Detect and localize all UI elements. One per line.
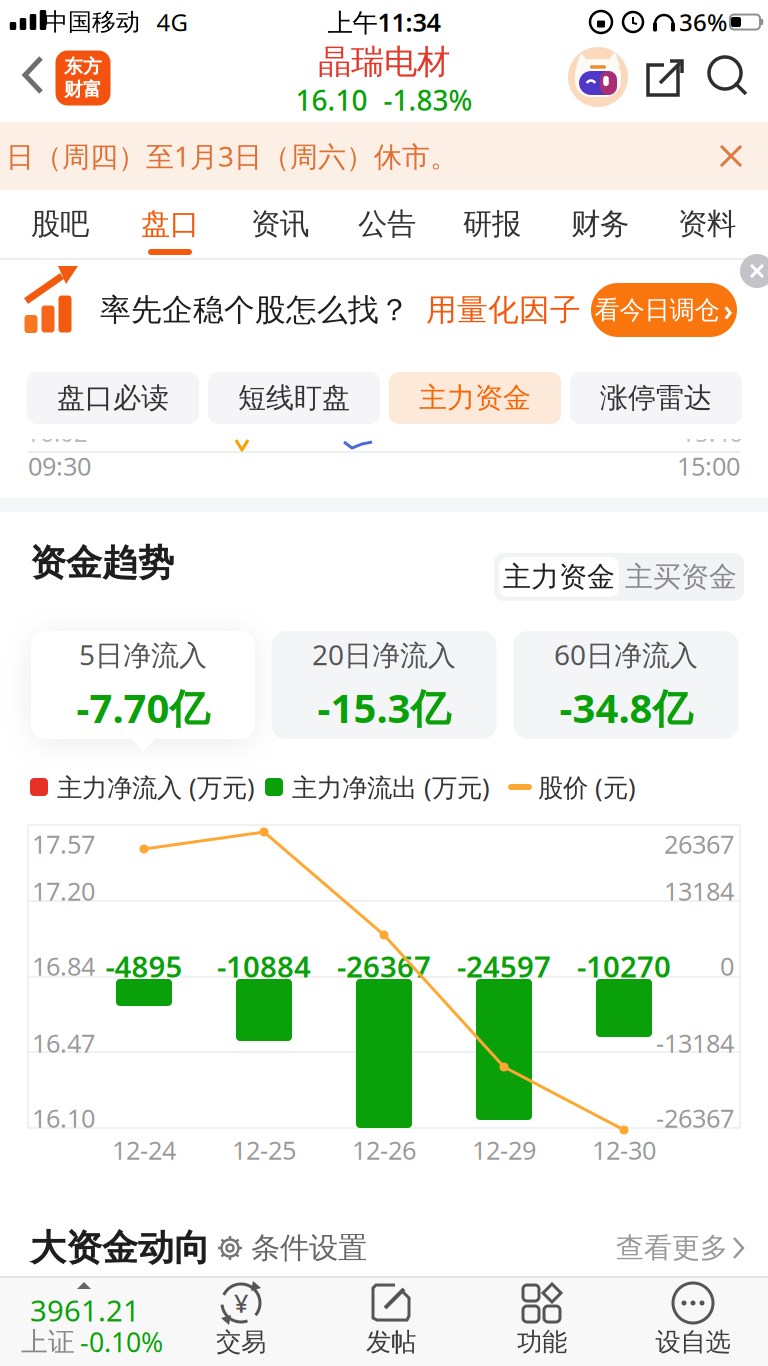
button[interactable]: 短线盯盘 — [208, 372, 380, 424]
staticText: 主力资金 — [503, 560, 615, 594]
button[interactable]: 5日净流入 — [31, 631, 255, 739]
staticText: -13184 — [656, 1026, 734, 1060]
button[interactable]: 股吧 — [10, 192, 110, 256]
staticText: 发帖 — [366, 1326, 416, 1357]
staticText: 资金趋势 — [30, 541, 174, 585]
staticText: 12-25 — [232, 1133, 296, 1167]
staticText: 盘口必读 — [57, 381, 169, 415]
staticText: 16.84 — [32, 949, 95, 983]
button[interactable]: ¥ — [186, 1270, 296, 1356]
button[interactable]: Search — [708, 56, 752, 100]
button[interactable]: 盘口必读 — [27, 372, 199, 424]
button[interactable]: Share — [646, 55, 686, 101]
button[interactable]: 资讯 — [230, 192, 330, 256]
button[interactable]: 涨停雷达 — [570, 372, 742, 424]
staticText: 条件设置 — [251, 1230, 367, 1266]
staticText: › — [723, 291, 733, 329]
button[interactable]: 研报 — [442, 192, 542, 256]
staticText: 09:30 — [28, 449, 91, 483]
staticText: 12-26 — [352, 1133, 416, 1167]
staticText: 36% — [679, 6, 727, 38]
staticText: 20日净流入 — [312, 636, 456, 673]
staticText: 设自选 — [655, 1326, 730, 1357]
staticText: 12-29 — [472, 1133, 536, 1167]
button[interactable]: 公告 — [337, 192, 437, 256]
staticText: 60日净流入 — [554, 636, 698, 673]
staticText: 交易 — [216, 1326, 266, 1357]
staticText: ¥ — [234, 1286, 248, 1320]
staticText: 5日净流入 — [79, 636, 207, 673]
staticText: 主买资金 — [625, 560, 737, 594]
staticText: -26367 — [656, 1101, 734, 1135]
staticText: 看今日调仓 — [594, 294, 719, 325]
staticText: -4895 — [105, 946, 182, 985]
staticText: 15.46 — [681, 417, 743, 448]
staticText: 16.10 — [295, 81, 367, 119]
button[interactable]: 资料 — [657, 192, 757, 256]
staticText: 短线盯盘 — [238, 381, 350, 415]
staticText: 17.57 — [32, 827, 95, 861]
staticText: 主力净流出 (万元) — [292, 770, 490, 804]
staticText: 盘口 — [141, 206, 199, 242]
staticText: -10270 — [577, 946, 671, 985]
staticText: 26367 — [664, 827, 734, 861]
staticText: 功能 — [517, 1326, 567, 1357]
button[interactable]: 20日净流入 — [271, 631, 496, 739]
button[interactable]: 条件设置 — [217, 1230, 367, 1266]
staticText: -0.10% — [80, 1324, 163, 1360]
staticText: 上证 — [21, 1326, 75, 1358]
staticText: -34.8亿 — [559, 681, 692, 734]
button[interactable]: 查看更多 — [616, 1231, 744, 1265]
staticText: 晶瑞电材 — [318, 41, 450, 82]
staticText: 率先企稳个股怎么找？ — [100, 291, 410, 329]
staticText: 日（周四）至1月3日（周六）休市。 — [6, 137, 458, 175]
staticText: 16.47 — [32, 1026, 95, 1060]
staticText: 股吧 — [31, 206, 89, 242]
staticText: 大资金动向 — [30, 1226, 210, 1270]
staticText: 资料 — [678, 206, 736, 242]
button[interactable]: 财务 — [550, 192, 650, 256]
staticText: 3961.21 — [30, 1290, 140, 1329]
staticText: 15:00 — [677, 449, 740, 483]
button[interactable]: 盘口 — [120, 192, 220, 256]
staticText: 4G — [156, 6, 187, 38]
button[interactable]: 主力资金 — [499, 557, 619, 597]
button[interactable]: 设自选 — [638, 1270, 748, 1356]
staticText: 中国移动 — [44, 7, 140, 37]
staticText: 16.02 — [26, 417, 88, 448]
staticText: -24597 — [457, 946, 551, 985]
staticText: 12-24 — [112, 1133, 176, 1167]
button[interactable]: 智能助手 — [564, 43, 632, 111]
staticText: 13184 — [664, 874, 734, 908]
staticText: 股价 (元) — [538, 770, 636, 804]
staticText: 16.10 — [32, 1101, 95, 1135]
staticText: 财务 — [571, 206, 629, 242]
button[interactable]: 看今日调仓 — [591, 283, 737, 337]
staticText: 17.20 — [32, 874, 95, 908]
staticText: 资讯 — [251, 206, 309, 242]
staticText: 上午11:34 — [327, 5, 440, 39]
staticText: 东方 — [64, 55, 102, 78]
button[interactable]: 关闭 — [721, 146, 741, 166]
button[interactable]: Back — [25, 58, 51, 98]
button[interactable]: 功能 — [487, 1270, 597, 1356]
button[interactable]: 东方财富 — [55, 50, 110, 105]
staticText: -15.3亿 — [317, 681, 450, 734]
staticText: 0 — [720, 949, 734, 983]
staticText: -1.83% — [383, 81, 472, 119]
staticText: -26367 — [337, 946, 431, 985]
button[interactable]: 主买资金 — [620, 556, 742, 598]
button[interactable]: 关闭广告 — [740, 254, 768, 288]
staticText: 财富 — [64, 78, 102, 101]
button[interactable]: 主力资金 — [389, 372, 561, 424]
staticText: 用量化因子 — [426, 291, 581, 329]
staticText: -10884 — [217, 946, 311, 985]
button[interactable]: 3961.21 — [0, 1270, 184, 1356]
button[interactable]: 发帖 — [337, 1270, 447, 1356]
button[interactable]: 60日净流入 — [513, 631, 738, 739]
staticText: -7.70亿 — [76, 681, 209, 734]
staticText: 查看更多 — [616, 1231, 728, 1265]
staticText: 公告 — [358, 206, 416, 242]
staticText: 研报 — [463, 206, 521, 242]
staticText: 12-30 — [592, 1133, 656, 1167]
